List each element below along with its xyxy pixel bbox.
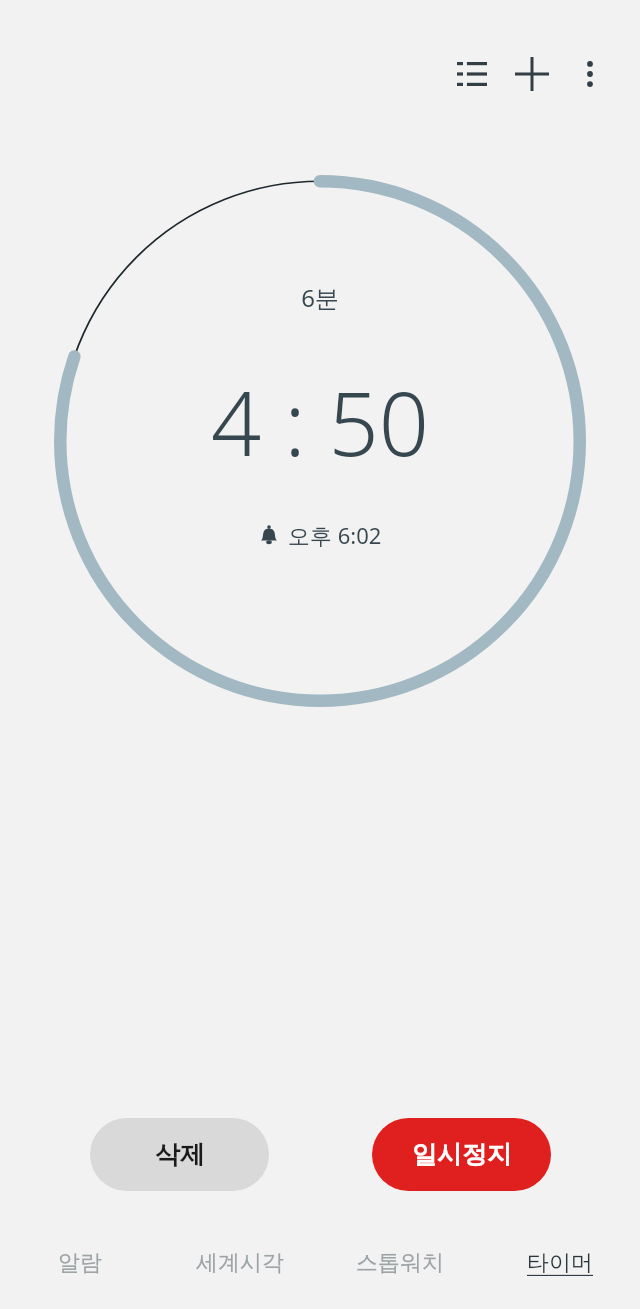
button[interactable]: More options — [562, 46, 618, 102]
button[interactable]: Timer list — [442, 44, 502, 104]
staticText: 6분 — [301, 281, 339, 314]
button[interactable]: Add timer — [502, 44, 562, 104]
staticText: 세계시각 — [196, 1249, 284, 1277]
button[interactable]: 스톱워치 — [320, 1240, 480, 1296]
button[interactable]: 삭제 — [90, 1118, 269, 1191]
button[interactable]: 일시정지 — [372, 1118, 551, 1191]
staticText: 오후 6:02 — [288, 520, 382, 550]
button[interactable]: 알람 — [0, 1240, 160, 1296]
button[interactable]: 세계시각 — [160, 1240, 320, 1296]
staticText: 스톱워치 — [356, 1249, 444, 1277]
button[interactable]: 타이머 — [480, 1240, 640, 1296]
staticText: 알람 — [58, 1249, 102, 1277]
staticText: 타이머 — [527, 1249, 593, 1277]
staticText: 삭제 — [155, 1139, 205, 1170]
staticText: 4 : 50 — [211, 362, 429, 482]
staticText: 일시정지 — [412, 1139, 512, 1170]
